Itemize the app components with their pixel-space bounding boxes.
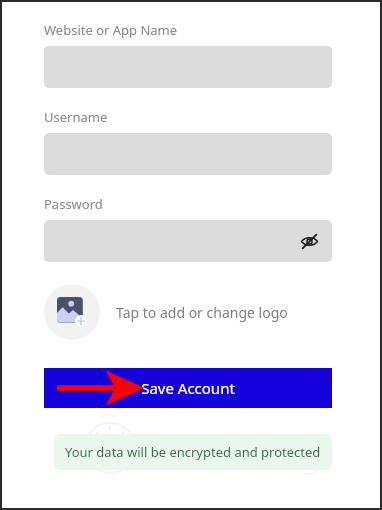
- button[interactable]: Save Account: [44, 368, 332, 408]
- staticText: Username: [44, 108, 108, 126]
- button[interactable]: Show password: [296, 228, 322, 254]
- staticText: Password: [44, 195, 103, 213]
- staticText: Tap to add or change logo: [116, 303, 288, 322]
- button[interactable]: Tap to add or change logo: [44, 284, 332, 340]
- staticText: Your data will be encrypted and protecte…: [65, 443, 321, 461]
- staticText: Save Account: [141, 378, 235, 398]
- staticText: Website or App Name: [44, 21, 178, 39]
- staticText: uantrimang: [130, 428, 322, 477]
- button[interactable]: Show password: [44, 220, 332, 262]
